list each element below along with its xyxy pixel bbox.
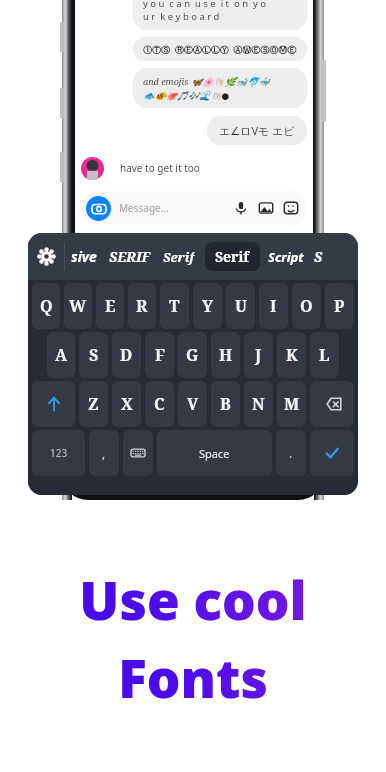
button[interactable]: sive	[71, 247, 97, 266]
button[interactable]: Z	[79, 381, 108, 427]
button[interactable]: F	[145, 332, 174, 378]
staticText: C	[154, 393, 165, 415]
button[interactable]: D	[112, 332, 141, 378]
staticText: ,	[102, 445, 106, 461]
staticText: S	[89, 344, 99, 366]
button[interactable]: Stickers	[283, 200, 299, 216]
button[interactable]: G	[178, 332, 207, 378]
staticText: R	[136, 295, 148, 317]
staticText: Z	[88, 393, 99, 415]
staticText: .	[289, 445, 293, 461]
staticText: Fonts	[118, 641, 268, 713]
button[interactable]: T	[160, 283, 189, 329]
button[interactable]: Voice message	[233, 200, 249, 216]
staticText: and emojis 🦋🌸🐚🌿🐋🐬🐳 🐟🐠🐙🎵🎶🌊🐚●	[143, 75, 270, 101]
button[interactable]: Backspace	[310, 381, 354, 427]
staticText: N	[252, 393, 265, 415]
staticText: Y	[202, 295, 214, 317]
button[interactable]: S	[79, 332, 108, 378]
staticText: F	[155, 344, 165, 366]
button[interactable]: Q	[32, 283, 60, 329]
button[interactable]: A	[47, 332, 75, 378]
staticText: ⒾⓉⓈ ⓇⒺⒶⓁⓁⓎ ⒶⓌⒺⓈⓄⓂⒺ	[143, 43, 297, 55]
staticText: B	[220, 393, 231, 415]
button[interactable]: K	[277, 332, 306, 378]
button[interactable]: B	[211, 381, 240, 427]
staticText: E	[105, 295, 116, 317]
button[interactable]: U	[226, 283, 255, 329]
staticText: S	[314, 247, 323, 266]
button[interactable]: Settings	[28, 233, 64, 280]
staticText: Serif	[215, 247, 250, 266]
button[interactable]: I	[259, 283, 288, 329]
button[interactable]: V	[178, 381, 207, 427]
button[interactable]: P	[325, 283, 354, 329]
button[interactable]: E	[96, 283, 124, 329]
staticText: 123	[50, 446, 68, 460]
button[interactable]: Script	[268, 248, 304, 266]
button[interactable]: X	[112, 381, 141, 427]
button[interactable]: H	[211, 332, 240, 378]
button[interactable]: Enter	[310, 430, 354, 476]
staticText: U	[235, 295, 247, 317]
staticText: T	[169, 295, 180, 317]
staticText: Use cool	[79, 563, 307, 635]
staticText: L	[319, 344, 330, 366]
staticText: A	[55, 344, 68, 366]
button[interactable]: Camera	[86, 196, 111, 221]
staticText: sive	[71, 247, 97, 266]
button[interactable]: .	[276, 430, 306, 476]
button[interactable]: Serif	[163, 248, 195, 266]
staticText: K	[286, 344, 298, 366]
button[interactable]: N	[244, 381, 273, 427]
staticText: W	[69, 295, 87, 317]
staticText: O	[300, 295, 313, 317]
staticText: J	[255, 344, 262, 366]
staticText: Serif	[163, 248, 195, 266]
button[interactable]: W	[64, 283, 92, 329]
staticText: P	[334, 295, 345, 317]
button[interactable]: SERIF	[109, 247, 151, 266]
staticText: V	[187, 393, 199, 415]
button[interactable]: Shift	[32, 381, 75, 427]
button[interactable]: L	[310, 332, 339, 378]
staticText: y o u c a n u s e i t o n y o u r k e y …	[143, 0, 267, 23]
staticText: エ∠ロVモ エビ	[219, 123, 295, 138]
staticText: Message...	[119, 201, 169, 215]
staticText: SERIF	[109, 247, 151, 266]
button[interactable]: M	[277, 381, 306, 427]
button[interactable]: Y	[193, 283, 222, 329]
staticText: Q	[40, 295, 53, 317]
button[interactable]: Space	[157, 430, 272, 476]
button[interactable]: Camera	[81, 191, 307, 225]
staticText: H	[219, 344, 233, 366]
button[interactable]: J	[244, 332, 273, 378]
staticText: I	[270, 295, 277, 317]
button[interactable]: ,	[89, 430, 119, 476]
button[interactable]: Switch keyboard	[123, 430, 153, 476]
staticText: D	[120, 344, 133, 366]
staticText: X	[121, 393, 133, 415]
button[interactable]: R	[128, 283, 156, 329]
button[interactable]: O	[292, 283, 321, 329]
button[interactable]: 123	[32, 430, 85, 476]
staticText: have to get it too	[120, 161, 200, 175]
button[interactable]: Gallery	[258, 200, 274, 216]
button[interactable]: Serif	[205, 242, 260, 271]
staticText: Space	[199, 446, 230, 461]
button[interactable]: C	[145, 381, 174, 427]
staticText: M	[284, 393, 300, 415]
staticText: G	[186, 344, 199, 366]
button[interactable]: S	[314, 247, 323, 266]
staticText: Script	[268, 248, 304, 266]
